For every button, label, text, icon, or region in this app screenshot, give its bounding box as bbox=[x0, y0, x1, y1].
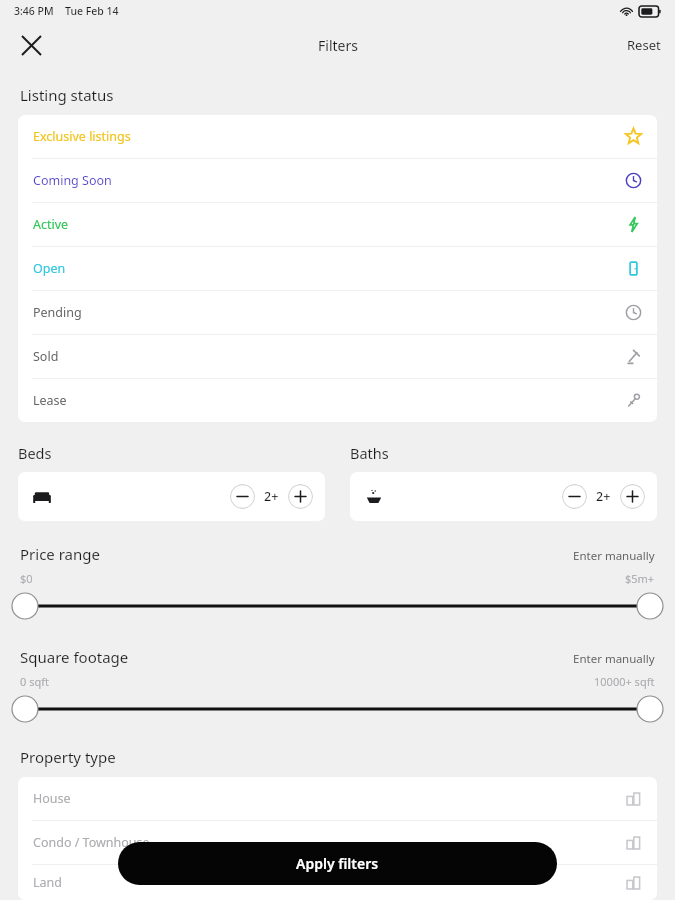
staticText: Open bbox=[33, 260, 625, 277]
button[interactable]: Enter manually bbox=[573, 651, 655, 667]
staticText: Apply filters bbox=[296, 854, 379, 873]
staticText: $5m+ bbox=[625, 571, 655, 586]
button[interactable]: Lease bbox=[18, 379, 657, 422]
staticText: 0 sqft bbox=[20, 674, 49, 689]
staticText: Sold bbox=[33, 348, 625, 365]
button[interactable]: Pending bbox=[18, 291, 657, 334]
button[interactable]: House bbox=[18, 777, 657, 820]
button[interactable]: Reset bbox=[613, 26, 675, 64]
button[interactable]: Square footage slider bbox=[0, 694, 675, 724]
staticText: Enter manually bbox=[573, 548, 655, 564]
button[interactable]: Open bbox=[18, 247, 657, 290]
staticText: Condo / Townhouse bbox=[33, 834, 625, 851]
button[interactable]: Sold bbox=[18, 335, 657, 378]
staticText: Land bbox=[33, 874, 625, 891]
staticText: 10000+ sqft bbox=[594, 674, 655, 689]
staticText: Lease bbox=[33, 392, 625, 409]
staticText: Price range bbox=[20, 544, 100, 564]
staticText: Square footage bbox=[20, 647, 129, 667]
staticText: Reset bbox=[627, 36, 661, 54]
button[interactable]: Decrease bbox=[230, 484, 255, 509]
button[interactable]: Increase bbox=[620, 484, 645, 509]
button[interactable]: Condo / Townhouse bbox=[18, 821, 657, 864]
staticText: 2+ bbox=[264, 488, 279, 505]
staticText: Pending bbox=[33, 304, 625, 321]
button[interactable]: Active bbox=[18, 203, 657, 246]
button[interactable]: Decrease bbox=[562, 484, 587, 509]
staticText: Coming Soon bbox=[33, 172, 625, 189]
staticText: Listing status bbox=[20, 85, 114, 105]
staticText: Tue Feb 14 bbox=[65, 4, 119, 18]
staticText: Exclusive listings bbox=[33, 128, 625, 145]
button[interactable]: Price range slider bbox=[0, 591, 675, 621]
button[interactable]: Increase bbox=[288, 484, 313, 509]
staticText: 3:46 PM bbox=[14, 4, 54, 18]
staticText: $0 bbox=[20, 571, 33, 586]
staticText: Filters bbox=[318, 36, 358, 55]
staticText: Enter manually bbox=[573, 651, 655, 667]
button[interactable]: Land bbox=[18, 865, 657, 900]
button[interactable]: Close bbox=[11, 25, 51, 65]
staticText: Active bbox=[33, 216, 625, 233]
staticText: House bbox=[33, 790, 625, 807]
staticText: 2+ bbox=[596, 488, 611, 505]
staticText: Beds bbox=[18, 443, 52, 463]
staticText: Property type bbox=[20, 747, 116, 767]
staticText: Baths bbox=[350, 443, 389, 463]
button[interactable]: Exclusive listings bbox=[18, 115, 657, 158]
button[interactable]: Apply filters bbox=[118, 842, 557, 885]
button[interactable]: Coming Soon bbox=[18, 159, 657, 202]
button[interactable]: Enter manually bbox=[573, 548, 655, 564]
